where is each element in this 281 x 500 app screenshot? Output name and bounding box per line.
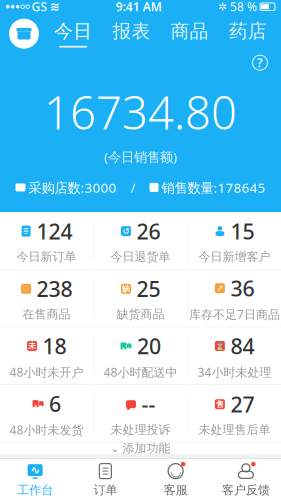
staticText: 今日 bbox=[54, 20, 92, 43]
staticText: 未处理投诉 bbox=[110, 422, 170, 437]
staticText: 48小时未开户 bbox=[10, 364, 84, 380]
staticText: 238 bbox=[37, 275, 73, 303]
button[interactable]: 20 bbox=[94, 327, 187, 384]
button[interactable]: 售 bbox=[188, 385, 281, 442]
staticText: 缺 bbox=[122, 284, 130, 294]
staticText: 27 bbox=[230, 390, 254, 418]
staticText: ↗ bbox=[216, 284, 223, 293]
staticText: 未处理售后单 bbox=[198, 422, 270, 437]
staticText: 6 bbox=[49, 389, 61, 418]
button[interactable]: 未 bbox=[0, 327, 93, 384]
button[interactable]: ◡ bbox=[140, 459, 211, 500]
staticText: 15 bbox=[230, 217, 254, 245]
staticText: 工作台 bbox=[17, 483, 53, 497]
staticText: ∿ bbox=[30, 463, 40, 477]
staticText: 未 bbox=[28, 341, 36, 351]
button[interactable]: ↺ bbox=[94, 212, 187, 269]
staticText: 客户反馈 bbox=[222, 483, 270, 497]
button[interactable]: ∿ bbox=[0, 459, 70, 500]
staticText: 34小时未处理 bbox=[197, 364, 271, 380]
staticText: ✲ bbox=[218, 1, 227, 13]
staticText: ↺ bbox=[122, 227, 129, 236]
button[interactable]: 124 bbox=[0, 212, 93, 269]
staticText: ≋ bbox=[49, 0, 59, 13]
button[interactable]: 订单 bbox=[70, 459, 140, 500]
staticText: 售 bbox=[216, 399, 224, 409]
button[interactable]: ⌛ bbox=[188, 327, 281, 384]
staticText: 20 bbox=[137, 332, 161, 360]
staticText: 添加功能 bbox=[122, 441, 170, 456]
staticText: 订单 bbox=[93, 483, 117, 497]
button[interactable]: 店铺 bbox=[4, 16, 44, 52]
staticText: 今日新增客户 bbox=[198, 249, 270, 264]
staticText: / bbox=[130, 179, 135, 196]
staticText: 18 bbox=[43, 332, 67, 360]
button[interactable]: ♡ bbox=[0, 270, 93, 327]
button[interactable]: 商品 bbox=[160, 16, 219, 52]
staticText: 库存不足7日商品 bbox=[189, 306, 280, 322]
staticText: 商品 bbox=[171, 20, 209, 43]
staticText: 缺货商品 bbox=[116, 307, 164, 322]
staticText: ⌛ bbox=[215, 341, 225, 350]
button[interactable]: 缺 bbox=[94, 270, 187, 327]
button[interactable]: 客户反馈 bbox=[211, 459, 281, 500]
staticText: 84 bbox=[230, 332, 254, 360]
staticText: 48小时配送中 bbox=[103, 364, 177, 380]
staticText: 26 bbox=[136, 217, 160, 245]
staticText: 药店 bbox=[229, 20, 267, 43]
staticText: ♡ bbox=[23, 284, 30, 293]
button[interactable]: 帮助 bbox=[247, 52, 273, 74]
staticText: 16734.80 bbox=[44, 82, 237, 142]
staticText: ? bbox=[257, 55, 263, 71]
button[interactable]: 药店 bbox=[219, 16, 277, 52]
staticText: 48小时未发货 bbox=[10, 422, 84, 438]
staticText: 9:41 AM bbox=[116, 0, 162, 15]
staticText: GS bbox=[31, 0, 47, 15]
staticText: 在售商品 bbox=[23, 307, 71, 322]
staticText: 报表 bbox=[112, 20, 150, 43]
staticText: (今日销售额) bbox=[104, 148, 177, 166]
staticText: 36 bbox=[230, 274, 254, 302]
button[interactable]: 报表 bbox=[102, 16, 160, 52]
staticText: ⌄ bbox=[110, 442, 119, 454]
staticText: 25 bbox=[136, 275, 160, 303]
staticText: 今日退货单 bbox=[110, 249, 170, 264]
button[interactable]: -- bbox=[94, 385, 187, 442]
staticText: 124 bbox=[37, 217, 73, 245]
staticText: 客服 bbox=[164, 483, 188, 497]
button[interactable]: 6 bbox=[0, 385, 93, 442]
button[interactable]: 15 bbox=[188, 212, 281, 269]
staticText: ◡ bbox=[171, 464, 181, 479]
button[interactable]: ↗ bbox=[188, 270, 281, 327]
staticText: 今日新订单 bbox=[17, 249, 77, 264]
staticText: 销售数量:178645 bbox=[161, 179, 265, 196]
staticText: 采购店数:3000 bbox=[28, 179, 116, 196]
button[interactable]: 今日 bbox=[44, 16, 102, 52]
staticText: 58 % bbox=[230, 0, 257, 15]
staticText: -- bbox=[141, 390, 155, 418]
